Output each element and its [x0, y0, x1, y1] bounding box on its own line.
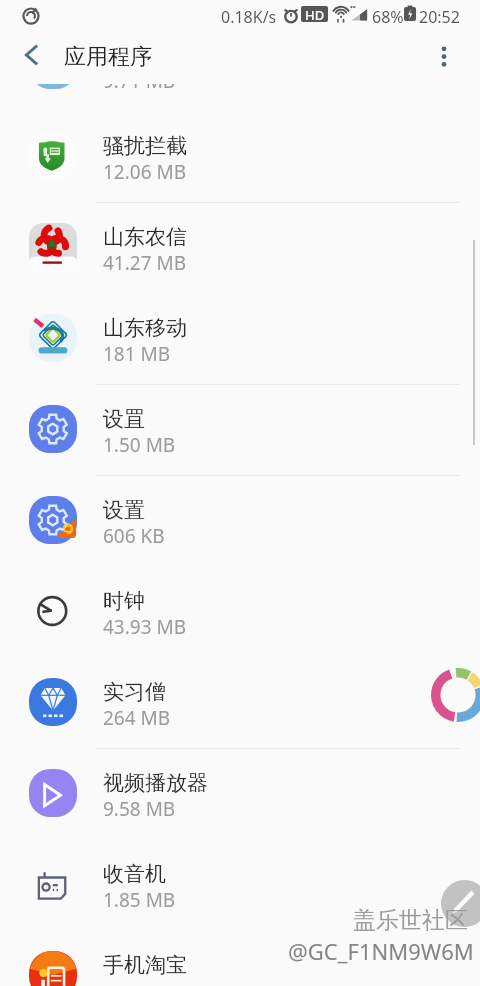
button[interactable]: 实习僧: [0, 657, 480, 748]
staticText: 68%: [372, 6, 404, 28]
staticText: 43.93 MB: [103, 614, 187, 640]
staticText: 设置: [103, 497, 145, 523]
staticText: 山东农信: [103, 224, 187, 250]
button[interactable]: 时钟: [0, 566, 480, 657]
staticText: 应用程序: [64, 43, 152, 71]
button[interactable]: 山东移动: [0, 293, 480, 384]
staticText: 9.58 MB: [103, 796, 176, 822]
staticText: 骚扰拦截: [103, 133, 187, 159]
staticText: 12.06 MB: [103, 159, 187, 185]
button[interactable]: More options: [420, 34, 468, 80]
button[interactable]: 手机淘宝: [0, 930, 480, 986]
button[interactable]: 山东农信: [0, 202, 480, 293]
staticText: 0.18K/s: [221, 6, 277, 28]
staticText: 264 MB: [103, 705, 171, 731]
button[interactable]: 骚扰拦截: [0, 111, 480, 202]
staticText: 41.27 MB: [103, 250, 187, 276]
staticText: 实习僧: [103, 679, 166, 705]
staticText: 181 MB: [103, 341, 171, 367]
staticText: 山东移动: [103, 315, 187, 341]
staticText: 1.50 MB: [103, 432, 176, 458]
staticText: 1.85 MB: [103, 887, 176, 913]
button[interactable]: 设置: [0, 475, 480, 566]
button[interactable]: 设罝: [0, 384, 480, 475]
staticText: 20:52: [419, 6, 460, 28]
button[interactable]: Back: [8, 34, 56, 80]
staticText: 盖乐世社区: [353, 906, 468, 935]
staticText: 时钟: [103, 588, 145, 614]
staticText: 9.71 MB: [103, 68, 176, 94]
staticText: 收音机: [103, 861, 166, 887]
staticText: @GC_F1NM9W6M: [288, 936, 474, 966]
button[interactable]: Edit: [441, 880, 480, 927]
staticText: 手机淘宝: [103, 952, 187, 978]
button[interactable]: 收音机: [0, 839, 480, 930]
staticText: 606 KB: [103, 523, 165, 549]
button[interactable]: 视频播放器: [0, 748, 480, 839]
staticText: 设罝: [103, 406, 145, 432]
staticText: HD: [305, 6, 325, 22]
staticText: 视频播放器: [103, 770, 208, 796]
